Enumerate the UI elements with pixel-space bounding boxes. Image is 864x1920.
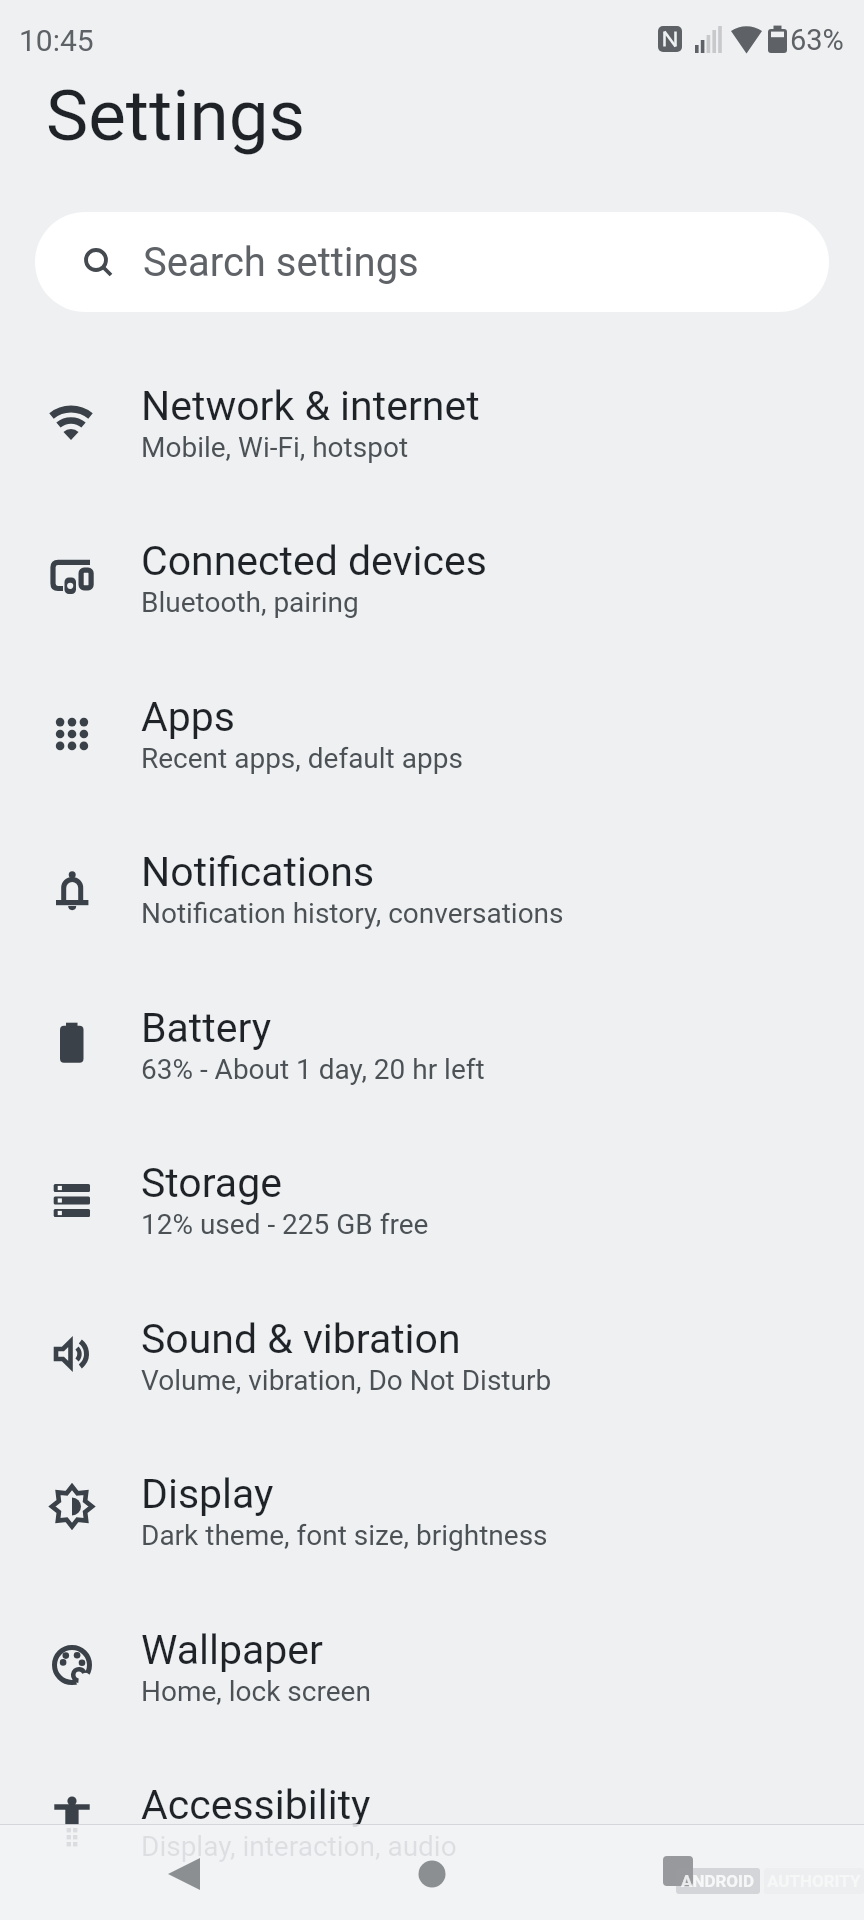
staticText: Wallpaper [141, 1626, 323, 1674]
staticText: Storage [141, 1159, 282, 1207]
staticText: Bluetooth, pairing [141, 586, 359, 619]
staticText: 10:45 [19, 23, 94, 58]
button[interactable]: Wallpaper [0, 1589, 864, 1744]
staticText: Dark theme, font size, brightness [141, 1519, 548, 1552]
staticText: Network & internet [141, 382, 480, 430]
staticText: Mobile, Wi-Fi, hotspot [141, 431, 409, 464]
staticText: 12% used - 225 GB free [141, 1208, 429, 1241]
button[interactable]: Storage [0, 1122, 864, 1278]
staticText: Display, interaction, audio [141, 1830, 457, 1863]
button[interactable]: Display [0, 1433, 864, 1589]
staticText: AUTHORITY [767, 1871, 861, 1891]
button[interactable]: Search settings [35, 212, 829, 312]
button[interactable] [400, 1840, 464, 1904]
button[interactable]: Connected devices [0, 500, 864, 656]
button[interactable]: Sound & vibration [0, 1278, 864, 1433]
button[interactable]: Notifications [0, 811, 864, 967]
staticText: Recent apps, default apps [141, 742, 463, 775]
staticText: 63% [790, 23, 844, 57]
staticText: Display [141, 1470, 274, 1518]
button[interactable]: Battery [0, 967, 864, 1122]
button[interactable]: Network & internet [0, 345, 864, 500]
staticText: Battery [141, 1004, 272, 1052]
staticText: ANDROID [681, 1871, 755, 1891]
button[interactable]: Accessibility [0, 1744, 864, 1900]
staticText: Settings [46, 74, 306, 157]
staticText: Volume, vibration, Do Not Disturb [141, 1364, 552, 1397]
button[interactable] [646, 1840, 710, 1904]
staticText: Apps [141, 693, 235, 741]
staticText: Accessibility [141, 1781, 371, 1829]
staticText: Notification history, conversations [141, 897, 564, 930]
button[interactable] [152, 1840, 216, 1904]
staticText: Home, lock screen [141, 1675, 371, 1708]
staticText: Search settings [143, 239, 419, 286]
staticText: Notifications [141, 848, 375, 896]
staticText: Sound & vibration [141, 1315, 461, 1363]
button[interactable]: Apps [0, 656, 864, 811]
staticText: 63% - About 1 day, 20 hr left [141, 1053, 485, 1086]
staticText: Connected devices [141, 537, 487, 585]
